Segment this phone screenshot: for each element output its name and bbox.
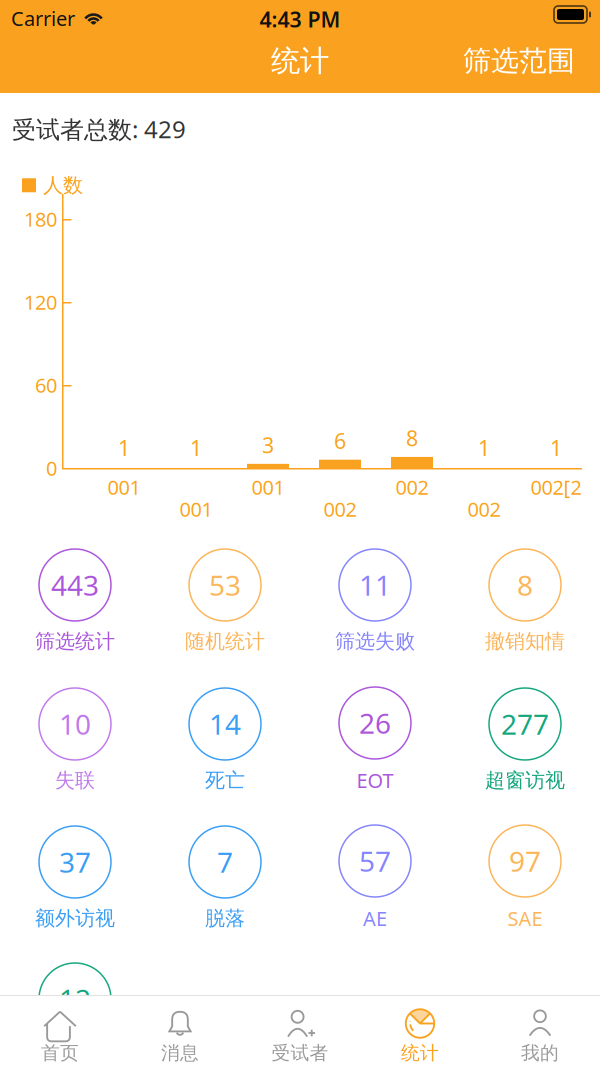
staticText: 受试者总数: 429 (12, 113, 186, 145)
button[interactable]: 277 (450, 688, 600, 793)
button[interactable]: 443 (0, 549, 150, 654)
staticText: 0 (46, 455, 57, 481)
staticText: 额外访视 (35, 906, 115, 931)
button[interactable]: 97 (450, 825, 600, 932)
staticText: 11 (359, 566, 391, 604)
staticText: Carrier (11, 5, 75, 32)
staticText: 120 (24, 289, 57, 315)
staticText: 1 (118, 433, 130, 462)
staticText: 统计 (401, 1041, 439, 1064)
staticText: 筛选范围 (463, 44, 575, 78)
staticText: 002[2 (530, 474, 581, 500)
button[interactable]: 8 (450, 549, 600, 654)
button[interactable]: 消息 (120, 996, 240, 1067)
staticText: 180 (24, 206, 57, 232)
staticText: 人数 (43, 173, 83, 198)
staticText: 26 (359, 704, 391, 742)
staticText: 首页 (41, 1041, 79, 1064)
staticText: 受试者 (271, 1041, 328, 1064)
staticText: 1 (478, 433, 490, 462)
staticText: 001 (179, 496, 212, 522)
staticText: 10 (59, 705, 91, 743)
staticText: 53 (209, 566, 241, 604)
staticText: 失联 (55, 768, 95, 793)
button[interactable]: 26 (300, 687, 450, 794)
staticText: 57 (359, 842, 391, 880)
staticText: 97 (509, 842, 541, 880)
button[interactable]: 12 (0, 963, 150, 1067)
staticText: 002 (395, 474, 428, 500)
staticText: 我的 (521, 1041, 559, 1064)
staticText: 3 (262, 431, 274, 459)
staticText: AE (363, 905, 387, 932)
staticText: 14 (209, 705, 241, 743)
staticText: 1 (190, 433, 202, 462)
staticText: 随机统计 (185, 629, 265, 654)
button[interactable]: 7 (150, 826, 300, 931)
button[interactable]: 首页 (0, 996, 120, 1067)
button[interactable]: 10 (0, 688, 150, 793)
staticText: 7 (217, 843, 233, 881)
staticText: 001 (107, 474, 140, 500)
staticText: 12 (59, 980, 91, 1018)
staticText: 37 (59, 843, 91, 881)
staticText: 443 (51, 566, 99, 604)
button[interactable]: 我的 (480, 996, 600, 1067)
button[interactable]: 37 (0, 826, 150, 931)
staticText: 脱落 (205, 906, 245, 931)
button[interactable]: 11 (300, 549, 450, 654)
staticText: 60 (35, 372, 57, 398)
staticText: 筛选统计 (35, 629, 115, 654)
staticText: 001 (251, 474, 284, 500)
staticText: 死亡 (205, 768, 245, 793)
staticText: EOT (356, 767, 393, 794)
staticText: 4:43 PM (259, 5, 340, 33)
staticText: 筛选失败 (335, 629, 415, 654)
staticText: 1 (550, 433, 562, 462)
button[interactable]: 统计 (360, 996, 480, 1067)
staticText: 超窗访视 (485, 768, 565, 793)
staticText: 撤销知情 (485, 629, 565, 654)
staticText: 002 (467, 496, 500, 522)
staticText: 8 (517, 566, 533, 604)
button[interactable]: 受试者 (240, 996, 360, 1067)
staticText: SAE (507, 905, 542, 932)
staticText: 6 (334, 426, 346, 455)
button[interactable]: 筛选范围 (452, 35, 586, 87)
staticText: 277 (501, 705, 549, 743)
staticText: 002 (323, 496, 356, 522)
staticText: 统计 (271, 43, 329, 79)
button[interactable]: 53 (150, 549, 300, 654)
staticText: 8 (406, 424, 418, 452)
button[interactable]: 14 (150, 688, 300, 793)
staticText: 消息 (161, 1041, 199, 1064)
button[interactable]: 57 (300, 825, 450, 932)
